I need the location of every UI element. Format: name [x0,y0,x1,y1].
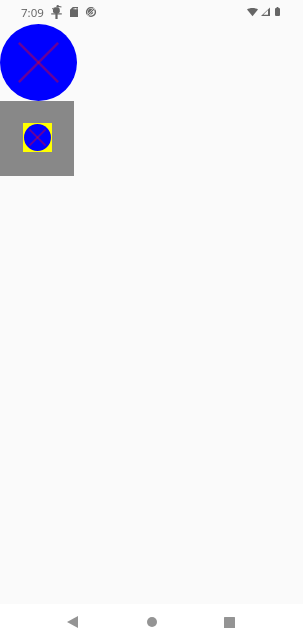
staticText: 7:09 [21,5,44,21]
button[interactable]: Vector image large [0,24,77,101]
button[interactable]: Back [52,604,92,640]
button[interactable]: Vector image small [0,101,74,176]
button[interactable]: Recent apps [209,604,249,640]
button[interactable]: Home [132,604,172,640]
